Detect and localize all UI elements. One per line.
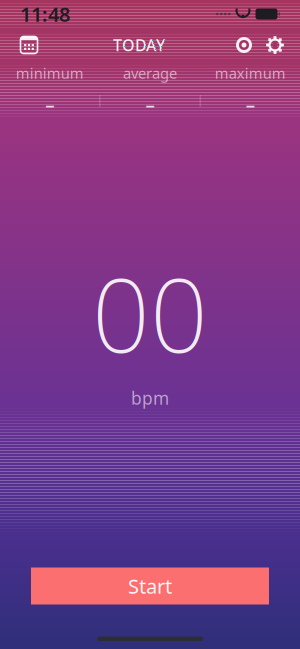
button[interactable]: History [9, 28, 49, 62]
staticText: minimum [16, 63, 84, 83]
staticText: average [123, 63, 177, 83]
staticText: – [246, 92, 255, 117]
staticText: 00 [92, 246, 208, 381]
staticText: – [145, 92, 154, 117]
staticText: Start [128, 573, 172, 599]
button[interactable]: Start [31, 567, 269, 604]
staticText: 11:48 [20, 1, 70, 27]
staticText: maximum [215, 63, 286, 83]
button[interactable]: Achievements [229, 28, 259, 62]
staticText: – [45, 92, 54, 117]
button[interactable]: Settings [259, 28, 291, 62]
staticText: bpm [131, 386, 169, 409]
staticText: TODAY [113, 34, 165, 56]
